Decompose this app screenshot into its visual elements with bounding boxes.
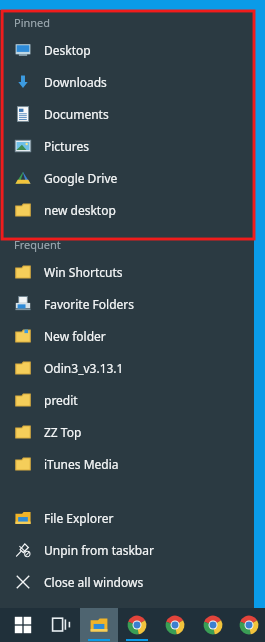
staticText: Pinned — [14, 15, 51, 30]
staticText: Google Drive — [44, 170, 118, 186]
button[interactable]: Documents — [0, 98, 254, 130]
button[interactable]: new desktop — [0, 194, 254, 226]
button[interactable]: New folder — [0, 320, 254, 352]
staticText: iTunes Media — [44, 456, 119, 472]
button[interactable]: Win Shortcuts — [0, 256, 254, 288]
button[interactable]: Start — [4, 608, 42, 642]
staticText: new desktop — [44, 202, 116, 218]
staticText: Favorite Folders — [44, 296, 135, 312]
button[interactable]: Google Chrome window 2 — [156, 608, 194, 642]
staticText: predit — [44, 392, 78, 408]
button[interactable]: Google Chrome window 1 — [118, 608, 156, 642]
staticText: ZZ Top — [44, 424, 82, 440]
button[interactable]: File Explorer — [80, 608, 118, 642]
button[interactable]: File Explorer — [0, 502, 254, 534]
button[interactable]: Google Chrome window 4 — [232, 608, 265, 642]
button[interactable]: Close all windows — [0, 566, 254, 598]
button[interactable]: Favorite Folders — [0, 288, 254, 320]
staticText: Pictures — [44, 138, 90, 154]
button[interactable]: Google Drive — [0, 162, 254, 194]
button[interactable]: Desktop — [0, 34, 254, 66]
staticText: Documents — [44, 106, 109, 122]
staticText: File Explorer — [44, 510, 114, 526]
button[interactable]: Task view — [42, 608, 80, 642]
staticText: Odin3_v3.13.1 — [44, 360, 124, 376]
button[interactable]: Downloads — [0, 66, 254, 98]
staticText: Frequent — [14, 237, 61, 252]
staticText: Unpin from taskbar — [44, 542, 154, 558]
button[interactable]: Google Chrome window 3 — [194, 608, 232, 642]
button[interactable]: predit — [0, 384, 254, 416]
button[interactable]: Unpin from taskbar — [0, 534, 254, 566]
staticText: New folder — [44, 328, 106, 344]
button[interactable]: ZZ Top — [0, 416, 254, 448]
button[interactable]: Pictures — [0, 130, 254, 162]
button[interactable]: Odin3_v3.13.1 — [0, 352, 254, 384]
staticText: Close all windows — [44, 574, 144, 590]
staticText: Downloads — [44, 74, 107, 90]
staticText: Desktop — [44, 42, 91, 58]
staticText: Win Shortcuts — [44, 264, 123, 280]
button[interactable]: iTunes Media — [0, 448, 254, 480]
